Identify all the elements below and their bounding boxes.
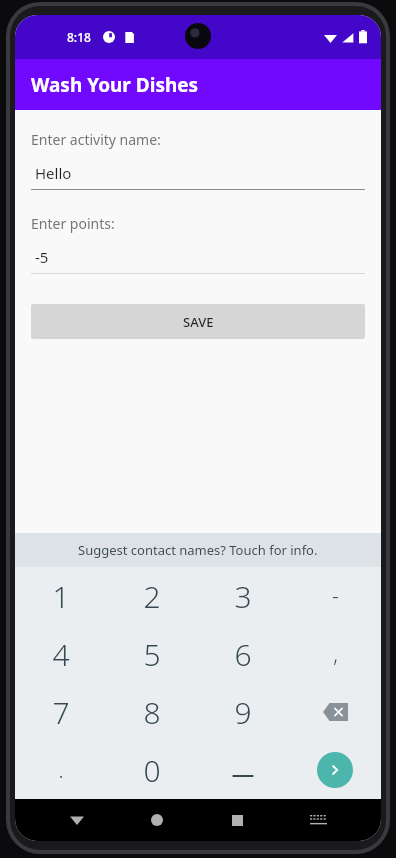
button[interactable]: Hello bbox=[31, 163, 365, 190]
button[interactable]: Enter bbox=[289, 741, 381, 799]
button[interactable]: 1 bbox=[15, 567, 106, 625]
button[interactable]: 8 bbox=[106, 683, 197, 741]
staticText: 1 bbox=[52, 576, 70, 617]
staticText: 9 bbox=[234, 692, 252, 733]
button[interactable]: , bbox=[289, 625, 381, 683]
button[interactable]: 6 bbox=[197, 625, 289, 683]
staticText: 0 bbox=[143, 750, 161, 791]
button[interactable]: 2 bbox=[106, 567, 197, 625]
staticText: Enter points: bbox=[31, 214, 115, 233]
button[interactable]: 5 bbox=[106, 625, 197, 683]
staticText: 4 bbox=[52, 634, 70, 675]
staticText: 8 bbox=[143, 692, 161, 733]
button[interactable]: SAVE bbox=[31, 304, 365, 339]
button[interactable]: Backspace bbox=[289, 683, 381, 741]
button[interactable]: - bbox=[289, 567, 381, 625]
staticText: 6 bbox=[234, 634, 252, 675]
staticText: 2 bbox=[143, 576, 161, 617]
button[interactable]: 7 bbox=[15, 683, 106, 741]
button[interactable]: 4 bbox=[15, 625, 106, 683]
staticText: 8:18 bbox=[67, 29, 91, 45]
button[interactable]: . bbox=[15, 741, 106, 799]
staticText: Suggest contact names? Touch for info. bbox=[78, 541, 318, 559]
button[interactable]: 3 bbox=[197, 567, 289, 625]
button[interactable]: Home bbox=[117, 799, 197, 841]
button[interactable]: Switch keyboard bbox=[278, 799, 359, 841]
button[interactable]: -5 bbox=[31, 247, 365, 274]
button[interactable]: 9 bbox=[197, 683, 289, 741]
staticText: - bbox=[332, 582, 339, 611]
staticText: . bbox=[58, 756, 64, 785]
button[interactable] bbox=[197, 741, 289, 799]
staticText: Wash Your Dishes bbox=[31, 72, 199, 98]
staticText: , bbox=[333, 640, 338, 669]
button[interactable]: Suggest contact names? Touch for info. bbox=[15, 533, 381, 567]
staticText: SAVE bbox=[183, 313, 214, 331]
button[interactable]: Hide keyboard bbox=[37, 799, 117, 841]
staticText: Hello bbox=[35, 163, 72, 183]
staticText: Enter activity name: bbox=[31, 130, 161, 149]
staticText: 5 bbox=[143, 634, 161, 675]
staticText: 7 bbox=[52, 692, 70, 733]
staticText: -5 bbox=[35, 247, 49, 267]
staticText: 3 bbox=[234, 576, 252, 617]
button[interactable]: Recents bbox=[197, 799, 278, 841]
button[interactable]: 0 bbox=[106, 741, 197, 799]
